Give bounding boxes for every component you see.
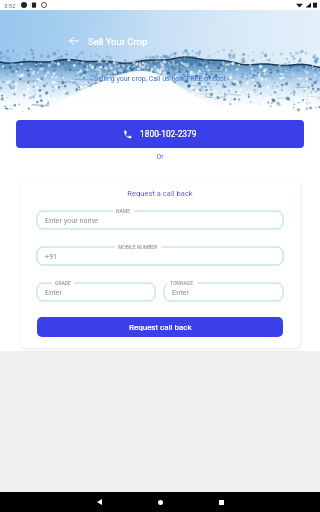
staticText: MOBILE NUMBER bbox=[118, 244, 158, 250]
staticText: GRADE bbox=[55, 280, 71, 286]
button[interactable]: Back bbox=[90, 493, 108, 511]
button[interactable]: Enter bbox=[37, 283, 155, 301]
button[interactable]: Enter your name bbox=[37, 211, 283, 229]
button[interactable]: Home bbox=[151, 493, 169, 511]
button[interactable]: Request call back bbox=[37, 317, 283, 337]
button[interactable]: +91 bbox=[37, 247, 283, 265]
staticText: Enter your name bbox=[45, 216, 98, 225]
button[interactable]: Enter bbox=[164, 283, 283, 301]
staticText: Sell Your Crop bbox=[88, 36, 148, 47]
staticText: Enter bbox=[45, 288, 62, 297]
staticText: +91 bbox=[45, 252, 58, 261]
button[interactable]: Back bbox=[66, 33, 82, 49]
staticText: Request call back bbox=[129, 323, 192, 332]
staticText: TONNAGE bbox=[170, 280, 194, 286]
button[interactable]: Recent apps bbox=[212, 493, 230, 511]
staticText: Enter bbox=[172, 288, 189, 297]
staticText: Or bbox=[0, 153, 320, 161]
staticText: 1800-102-2379 bbox=[140, 129, 197, 139]
staticText: 3:52 bbox=[4, 2, 16, 9]
staticText: Selling your crop, Call us now FREE of c… bbox=[94, 75, 226, 83]
staticText: Request a call back bbox=[37, 189, 283, 198]
button[interactable]: 1800-102-2379 bbox=[16, 120, 304, 148]
staticText: NAME bbox=[116, 208, 131, 214]
